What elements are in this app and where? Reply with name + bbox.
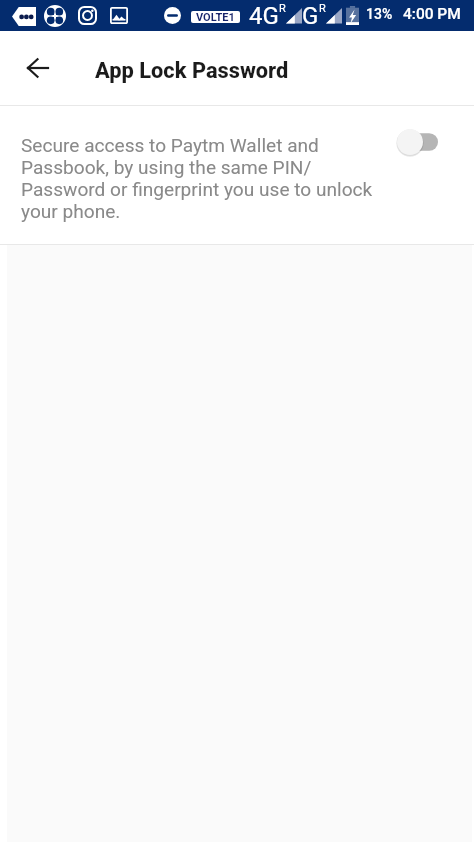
staticText: G [302,2,319,30]
staticText: Secure access to Paytm Wallet and Passbo… [21,134,383,222]
staticText: 4G [249,2,279,30]
button[interactable]: App lock toggle [389,121,447,163]
staticText: R [319,2,326,15]
button[interactable]: Back [10,41,64,95]
staticText: R [279,2,286,15]
staticText: 4:00 PM [403,5,461,23]
button[interactable]: Secure access to Paytm Wallet and Passbo… [0,106,474,244]
staticText: 13% [366,6,393,22]
staticText: VOLTE1 [196,11,235,23]
staticText: App Lock Password [95,58,289,84]
